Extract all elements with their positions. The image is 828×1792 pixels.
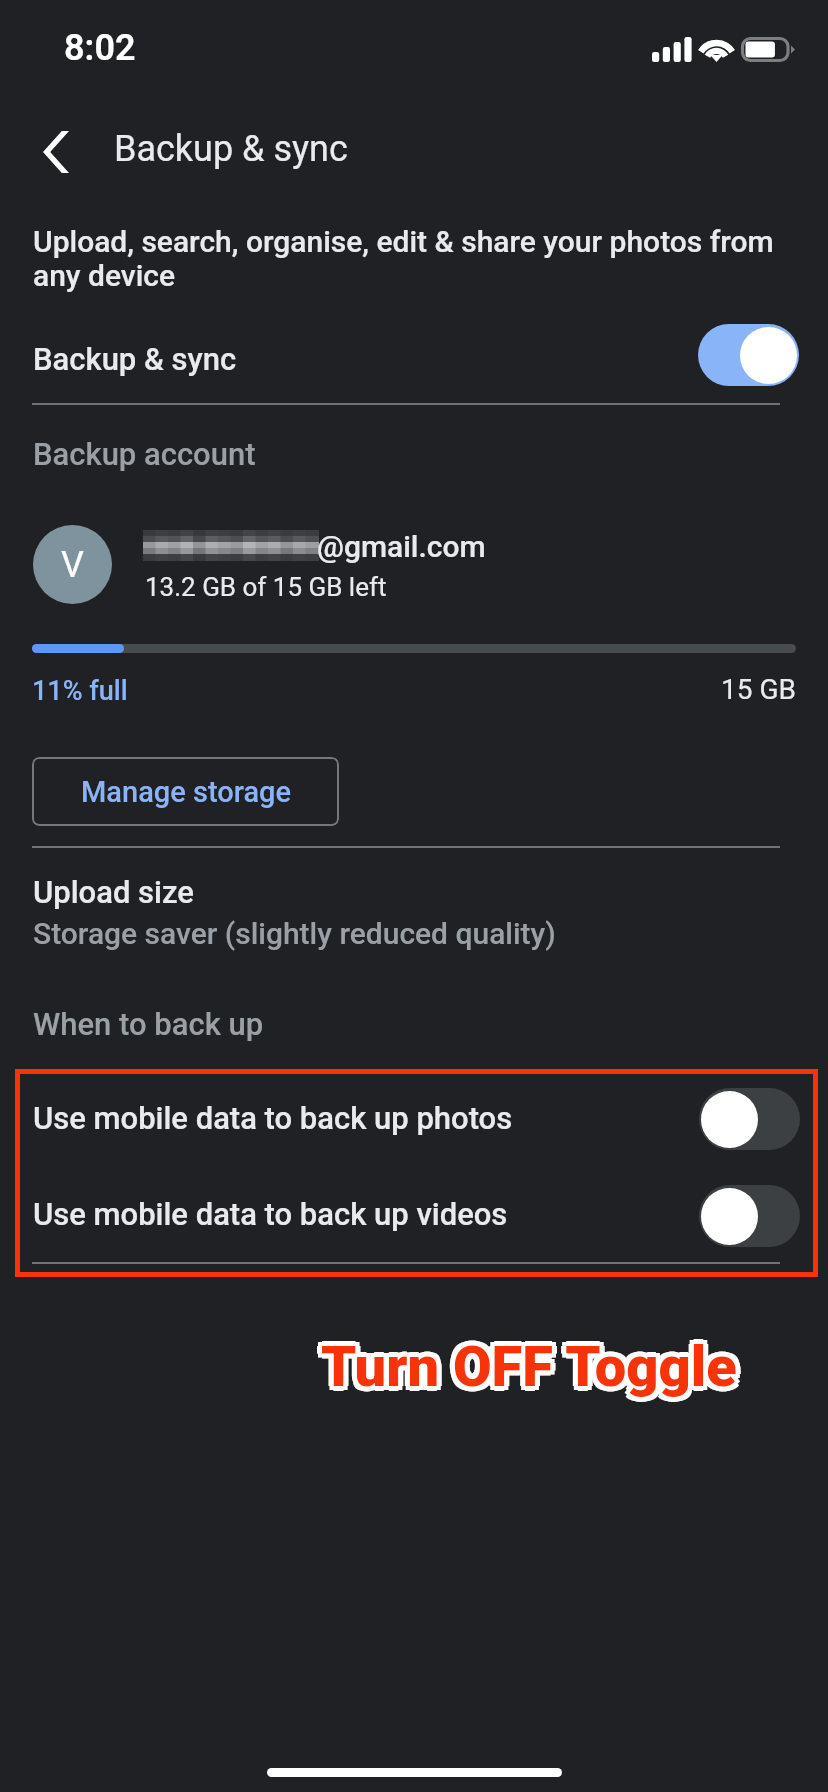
- button[interactable]: Back: [24, 120, 88, 184]
- staticText: V: [61, 544, 84, 586]
- button[interactable]: Use mobile data to back up videos: [0, 1168, 828, 1262]
- staticText: Backup & sync: [114, 128, 348, 170]
- button[interactable]: Switch on: [698, 324, 799, 386]
- staticText: Backup & sync: [33, 341, 237, 377]
- button[interactable]: Switch off: [699, 1185, 800, 1247]
- button[interactable]: Switch off: [699, 1088, 800, 1150]
- staticText: 13.2 GB of 15 GB left: [145, 572, 387, 602]
- staticText: Turn OFF Toggle: [325, 1338, 741, 1404]
- staticText: Turn OFF Toggle: [326, 1334, 742, 1400]
- staticText: Turn OFF Toggle: [321, 1334, 737, 1400]
- button[interactable]: Use mobile data to back up photos: [0, 1072, 828, 1166]
- button[interactable]: Manage storage: [32, 757, 339, 826]
- staticText: Turn OFF Toggle: [317, 1330, 733, 1396]
- staticText: Storage saver (slightly reduced quality): [33, 916, 556, 951]
- staticText: 11% full: [32, 675, 128, 707]
- staticText: Turn OFF Toggle: [317, 1338, 733, 1404]
- staticText: Turn OFF Toggle: [325, 1330, 741, 1396]
- staticText: When to back up: [33, 1006, 264, 1042]
- staticText: Upload, search, organise, edit & share y…: [33, 224, 795, 293]
- staticText: Manage storage: [81, 775, 291, 809]
- staticText: Backup account: [33, 436, 256, 472]
- staticText: Turn OFF Toggle: [316, 1334, 732, 1400]
- staticText: 15 GB: [721, 673, 796, 706]
- staticText: 8:02: [64, 27, 136, 69]
- staticText: Upload size: [33, 874, 194, 910]
- staticText: Use mobile data to back up photos: [33, 1100, 513, 1136]
- button[interactable]: Backup & sync: [0, 312, 828, 398]
- staticText: @gmail.com: [317, 529, 486, 564]
- staticText: Use mobile data to back up videos: [33, 1196, 508, 1232]
- staticText: Turn OFF Toggle: [321, 1339, 737, 1405]
- staticText: Turn OFF Toggle: [321, 1329, 737, 1395]
